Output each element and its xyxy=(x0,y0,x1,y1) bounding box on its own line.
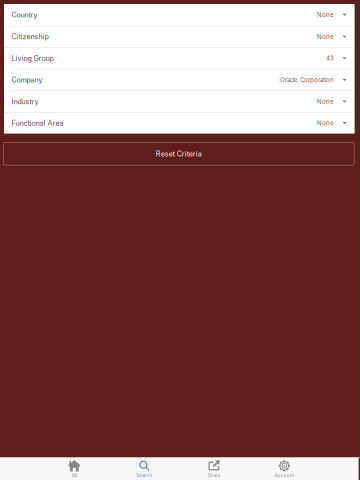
staticText: Search xyxy=(136,473,152,478)
staticText: None xyxy=(317,11,334,18)
button[interactable]: Account xyxy=(249,458,319,480)
button[interactable]: Industry xyxy=(4,90,355,112)
staticText: Oracle Corporation xyxy=(280,76,334,84)
staticText: Reset Criteria xyxy=(156,149,202,158)
button[interactable]: Share xyxy=(179,458,249,480)
staticText: All xyxy=(72,473,77,478)
button[interactable]: Citizenship xyxy=(4,26,355,47)
button[interactable]: Functional Area xyxy=(4,112,355,134)
staticText: Living Group xyxy=(11,54,53,63)
staticText: 43 xyxy=(326,55,334,62)
staticText: None xyxy=(317,33,334,40)
staticText: None xyxy=(317,119,334,127)
staticText: Citizenship xyxy=(11,32,48,41)
button[interactable]: Living Group xyxy=(4,47,355,69)
button[interactable]: All xyxy=(39,458,109,480)
staticText: Company xyxy=(11,76,42,84)
button[interactable]: Reset Criteria xyxy=(3,142,354,165)
staticText: Industry xyxy=(11,97,38,106)
button[interactable]: Search xyxy=(109,458,179,480)
staticText: Country xyxy=(11,10,37,19)
staticText: Functional Area xyxy=(11,119,63,127)
staticText: Account xyxy=(275,473,294,478)
button[interactable]: Country xyxy=(4,4,355,26)
button[interactable]: Company xyxy=(4,69,355,90)
staticText: None xyxy=(317,98,334,105)
staticText: Share xyxy=(208,473,221,478)
